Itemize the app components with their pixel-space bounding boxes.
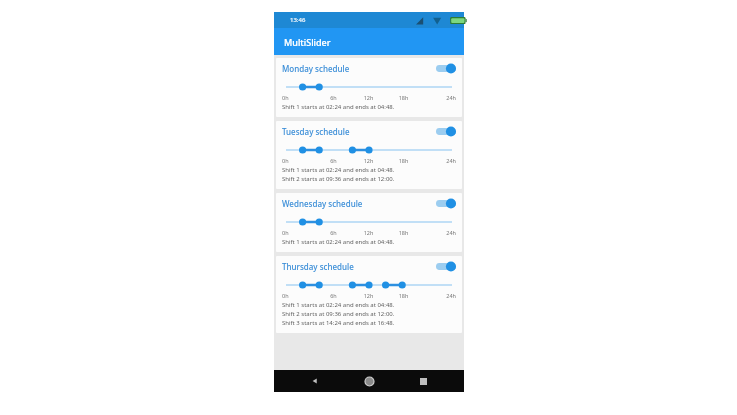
button[interactable]: Wednesday schedule: [276, 193, 462, 252]
staticText: 13:46: [290, 16, 306, 24]
button[interactable]: Toggle schedule: [436, 198, 456, 209]
staticText: 18h: [386, 157, 421, 164]
staticText: 12h: [351, 229, 386, 236]
staticText: Shift 1 starts at 02:24 and ends at 04:4…: [282, 238, 456, 246]
button[interactable]: Home: [356, 370, 382, 392]
button[interactable]: Back: [302, 370, 328, 392]
staticText: 24h: [421, 157, 456, 164]
staticText: Thursday schedule: [282, 261, 436, 272]
staticText: MultiSlider: [284, 36, 331, 48]
staticText: Shift 3 starts at 14:24 and ends at 16:4…: [282, 319, 456, 327]
staticText: 12h: [351, 94, 386, 101]
button[interactable]: Toggle schedule: [436, 126, 456, 137]
staticText: Shift 1 starts at 02:24 and ends at 04:4…: [282, 166, 456, 174]
staticText: Shift 1 starts at 02:24 and ends at 04:4…: [282, 103, 456, 111]
staticText: Monday schedule: [282, 63, 436, 74]
staticText: 24h: [421, 292, 456, 299]
staticText: 24h: [421, 94, 456, 101]
button[interactable]: Schedule range slider: [282, 144, 456, 156]
staticText: 0h: [282, 229, 316, 236]
staticText: 0h: [282, 292, 316, 299]
button[interactable]: Tuesday schedule: [276, 121, 462, 189]
staticText: 6h: [316, 292, 351, 299]
staticText: 18h: [386, 292, 421, 299]
button[interactable]: Recent apps: [410, 370, 436, 392]
staticText: Shift 2 starts at 09:36 and ends at 12:0…: [282, 310, 456, 318]
staticText: 18h: [386, 229, 421, 236]
button[interactable]: Toggle schedule: [436, 261, 456, 272]
button[interactable]: Schedule range slider: [282, 216, 456, 228]
staticText: 6h: [316, 94, 351, 101]
staticText: 0h: [282, 157, 316, 164]
staticText: 0h: [282, 94, 316, 101]
staticText: Shift 1 starts at 02:24 and ends at 04:4…: [282, 301, 456, 309]
staticText: 6h: [316, 229, 351, 236]
staticText: 24h: [421, 229, 456, 236]
staticText: Wednesday schedule: [282, 198, 436, 209]
staticText: 12h: [351, 157, 386, 164]
button[interactable]: Schedule range slider: [282, 81, 456, 93]
button[interactable]: Thursday schedule: [276, 256, 462, 333]
staticText: Tuesday schedule: [282, 126, 436, 137]
button[interactable]: Schedule range slider: [282, 279, 456, 291]
staticText: 12h: [351, 292, 386, 299]
staticText: 18h: [386, 94, 421, 101]
button[interactable]: Toggle schedule: [436, 63, 456, 74]
staticText: 6h: [316, 157, 351, 164]
button[interactable]: Monday schedule: [276, 58, 462, 117]
staticText: Shift 2 starts at 09:36 and ends at 12:0…: [282, 175, 456, 183]
